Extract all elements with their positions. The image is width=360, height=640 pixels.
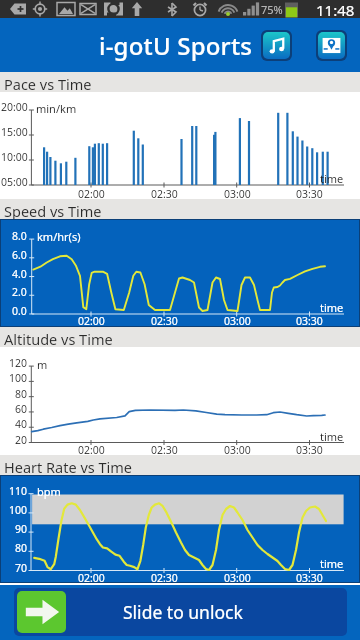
- staticText: 02:30: [151, 314, 178, 328]
- staticText: 02:00: [78, 187, 105, 201]
- staticText: 80: [15, 541, 28, 555]
- button[interactable]: Music: [261, 30, 292, 61]
- staticText: 70: [15, 561, 28, 575]
- staticText: Speed vs Time: [4, 201, 102, 221]
- staticText: 110: [9, 484, 28, 498]
- staticText: 05:00: [1, 175, 28, 189]
- staticText: time: [320, 300, 344, 315]
- staticText: i-gotU Sports: [99, 29, 253, 62]
- staticText: Slide to unlock: [123, 600, 243, 624]
- staticText: 0.0: [12, 304, 27, 318]
- staticText: 02:30: [151, 187, 178, 201]
- staticText: 03:00: [224, 187, 251, 201]
- staticText: 100: [9, 371, 28, 385]
- button[interactable]: Map: [316, 30, 347, 61]
- staticText: time: [320, 429, 344, 444]
- staticText: 100: [9, 503, 28, 517]
- staticText: 03:00: [224, 443, 251, 457]
- staticText: 60: [15, 402, 28, 416]
- staticText: 03:30: [296, 314, 323, 328]
- staticText: 11:48: [316, 0, 355, 18]
- staticText: 03:30: [296, 187, 323, 201]
- staticText: 03:00: [224, 571, 251, 585]
- staticText: 8.0: [12, 229, 27, 243]
- staticText: 02:00: [78, 443, 105, 457]
- staticText: 120: [9, 356, 28, 370]
- button[interactable]: Slide to unlock: [14, 588, 347, 636]
- staticText: 40: [15, 417, 28, 431]
- staticText: 20:00: [1, 100, 28, 114]
- staticText: Altitude vs Time: [4, 329, 113, 349]
- staticText: bpm: [37, 484, 61, 499]
- staticText: km/hr(s): [37, 229, 81, 244]
- staticText: time: [320, 556, 344, 571]
- staticText: 15:00: [1, 125, 28, 139]
- staticText: 90: [15, 522, 28, 536]
- staticText: 03:00: [224, 314, 251, 328]
- staticText: 02:30: [151, 443, 178, 457]
- staticText: Pace vs Time: [4, 74, 92, 94]
- staticText: 02:00: [78, 571, 105, 585]
- staticText: 20: [15, 433, 28, 447]
- staticText: 2.0: [12, 285, 27, 299]
- staticText: 6.0: [12, 248, 27, 262]
- staticText: Heart Rate vs Time: [4, 457, 133, 477]
- staticText: 03:30: [296, 443, 323, 457]
- staticText: 80: [15, 387, 28, 401]
- staticText: min/km: [36, 101, 77, 116]
- staticText: m: [37, 357, 48, 372]
- staticText: 75%: [261, 2, 283, 17]
- staticText: 03:30: [296, 571, 323, 585]
- staticText: 10:00: [1, 150, 28, 164]
- staticText: 02:00: [78, 314, 105, 328]
- staticText: 02:30: [151, 571, 178, 585]
- staticText: time: [320, 171, 344, 186]
- staticText: 4.0: [12, 267, 27, 281]
